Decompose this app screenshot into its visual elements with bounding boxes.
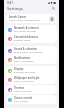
- staticText: Wi-Fi, mobile, data usage: [14, 30, 37, 33]
- staticText: Settings: [7, 6, 23, 12]
- staticText: Jonah Carter: [9, 15, 27, 19]
- staticText: Google Account · jonah@gmail.com: [9, 19, 41, 22]
- button[interactable]: Device control: [6, 95, 57, 104]
- button[interactable]: Wallpaper and style: [6, 75, 57, 84]
- button[interactable]: Themes: [6, 85, 57, 94]
- staticText: Sound & vibration: [14, 47, 38, 51]
- button[interactable]: Account avatar: [49, 16, 55, 22]
- staticText: Apps, assistants: [14, 100, 29, 103]
- staticText: Presets, fonts, icons: [14, 90, 32, 93]
- staticText: Display: [14, 67, 24, 71]
- staticText: Connected devices: [14, 35, 38, 39]
- staticText: Themes: [14, 86, 25, 90]
- button[interactable]: Sound & vibration: [6, 46, 57, 55]
- staticText: Network & internet: [14, 26, 39, 30]
- button[interactable]: Search settings: [51, 6, 56, 11]
- button[interactable]: Connected devices: [6, 34, 57, 43]
- staticText: Bluetooth, pairing: [14, 39, 31, 42]
- button[interactable]: Jonah Carter: [6, 14, 57, 23]
- staticText: History, conversations: [14, 60, 34, 63]
- staticText: Wallpaper and style: [14, 76, 40, 80]
- staticText: Brightness, Dark theme: [14, 71, 36, 74]
- button[interactable]: Network & internet: [6, 25, 57, 34]
- button[interactable]: Notifications: [6, 55, 57, 64]
- staticText: Colours, themed icons: [14, 80, 34, 83]
- staticText: 9:41: [7, 1, 13, 5]
- staticText: Device control: [14, 96, 33, 100]
- button[interactable]: Display: [6, 66, 57, 75]
- staticText: Notifications: [14, 56, 31, 60]
- staticText: Volume, haptics, Do Not Disturb: [14, 51, 43, 54]
